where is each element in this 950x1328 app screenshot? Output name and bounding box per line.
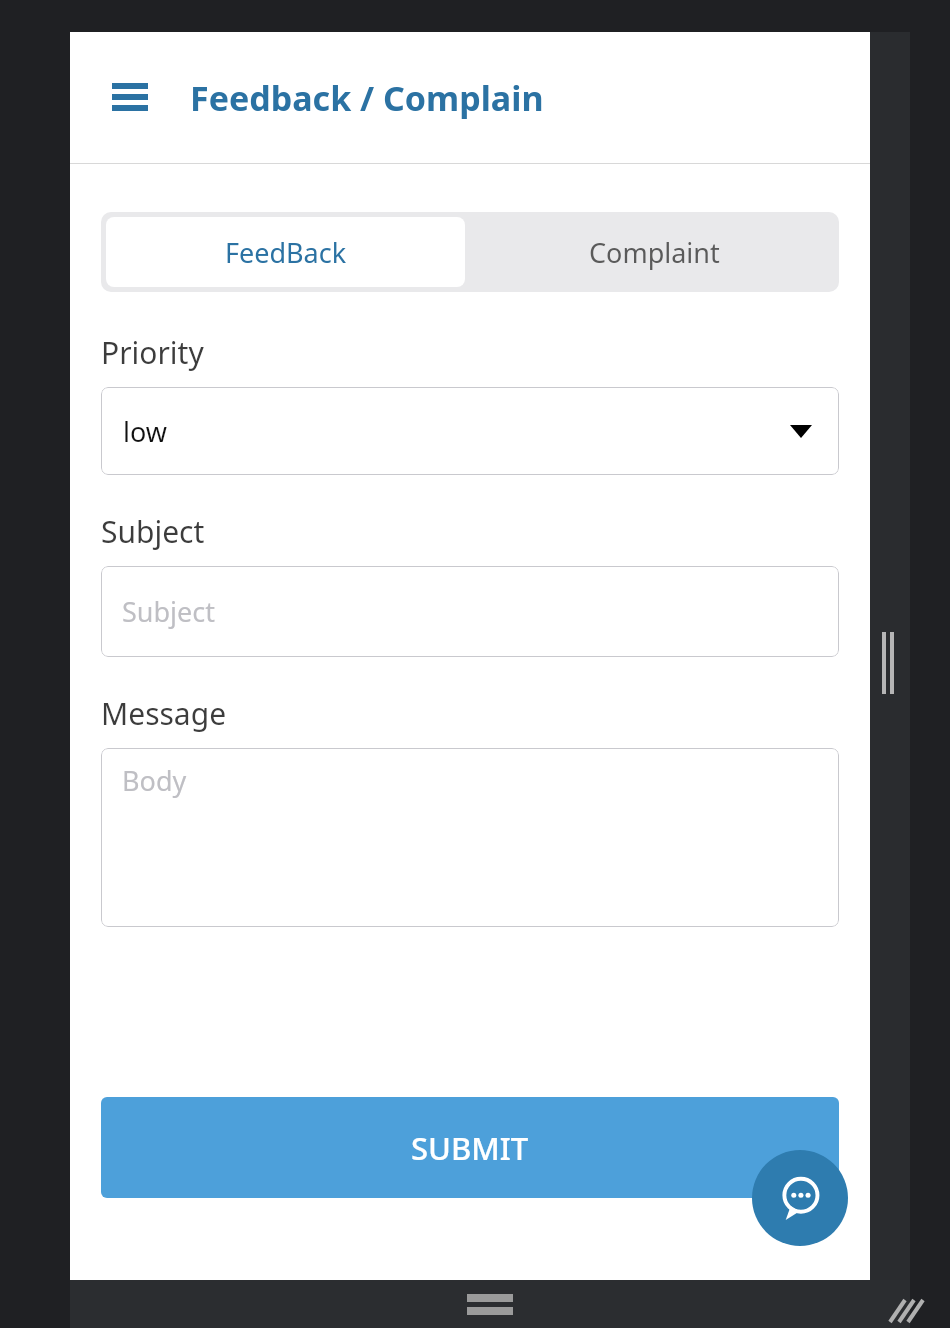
- button[interactable]: low: [101, 387, 839, 475]
- staticText: Subject: [122, 593, 216, 630]
- staticText: Body: [122, 762, 187, 799]
- staticText: Subject: [101, 511, 205, 552]
- staticText: FeedBack: [225, 234, 347, 271]
- button[interactable]: Complaint: [470, 212, 839, 292]
- staticText: SUBMIT: [411, 1127, 529, 1169]
- button[interactable]: SUBMIT: [101, 1097, 839, 1198]
- button[interactable]: Chat support: [752, 1150, 848, 1246]
- button[interactable]: FeedBack: [106, 217, 465, 287]
- button[interactable]: Subject: [101, 566, 839, 657]
- staticText: Feedback / Complain: [190, 75, 544, 121]
- staticText: Complaint: [589, 234, 720, 271]
- staticText: Priority: [101, 332, 204, 373]
- button[interactable]: Open navigation menu: [102, 70, 158, 126]
- staticText: low: [123, 413, 167, 450]
- staticText: Message: [101, 693, 227, 734]
- button[interactable]: Body: [101, 748, 839, 927]
